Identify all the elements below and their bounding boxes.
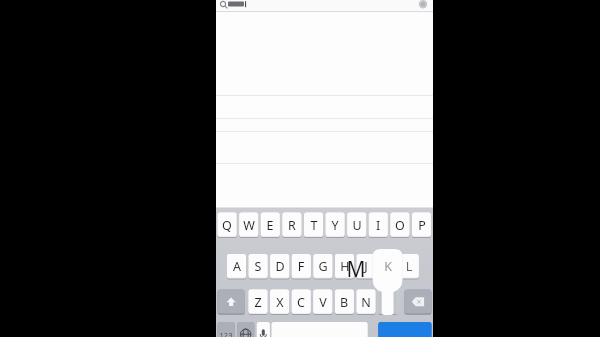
staticText: J bbox=[355, 258, 377, 277]
button[interactable]: S bbox=[249, 254, 268, 279]
staticText: A bbox=[226, 258, 248, 277]
button[interactable]: R bbox=[282, 213, 301, 238]
staticText: U bbox=[346, 217, 368, 236]
button[interactable]: K bbox=[378, 254, 397, 279]
staticText: E bbox=[259, 217, 281, 236]
button[interactable]: Backspace bbox=[404, 290, 431, 315]
button[interactable]: C bbox=[292, 290, 311, 315]
staticText: Y bbox=[324, 217, 346, 236]
staticText: O bbox=[389, 217, 411, 236]
button[interactable]: D bbox=[270, 254, 289, 279]
staticText: P bbox=[411, 217, 433, 236]
button[interactable]: Search field bbox=[216, 0, 433, 11]
button[interactable]: T bbox=[304, 213, 323, 238]
staticText: B bbox=[333, 294, 355, 313]
button[interactable]: W bbox=[239, 213, 258, 238]
button[interactable]: Q bbox=[218, 213, 237, 238]
button[interactable]: O bbox=[390, 213, 409, 238]
button[interactable]: G bbox=[313, 254, 332, 279]
button[interactable]: B bbox=[335, 290, 354, 315]
button[interactable]: J bbox=[357, 254, 376, 279]
button[interactable]: F bbox=[292, 254, 311, 279]
staticText: D bbox=[269, 258, 291, 277]
button[interactable]: X bbox=[270, 290, 289, 315]
staticText: F bbox=[290, 258, 312, 277]
staticText: V bbox=[312, 294, 334, 313]
staticText: S bbox=[247, 258, 269, 277]
button[interactable]: N bbox=[357, 290, 376, 315]
staticText: Q bbox=[216, 217, 238, 236]
staticText: H bbox=[334, 258, 356, 277]
button[interactable]: Change keyboard bbox=[237, 322, 254, 337]
staticText: M bbox=[345, 255, 367, 287]
staticText: Z bbox=[247, 294, 269, 313]
button[interactable]: H bbox=[335, 254, 354, 279]
button[interactable]: Dictate bbox=[257, 322, 270, 337]
staticText: C bbox=[290, 294, 312, 313]
staticText: N bbox=[355, 294, 377, 313]
button[interactable]: Shift bbox=[218, 290, 245, 315]
button[interactable]: E bbox=[261, 213, 280, 238]
button[interactable]: V bbox=[313, 290, 332, 315]
button[interactable]: Z bbox=[249, 290, 268, 315]
button[interactable]: Y bbox=[326, 213, 345, 238]
staticText: T bbox=[303, 217, 325, 236]
staticText: W bbox=[238, 217, 260, 236]
staticText: X bbox=[269, 294, 291, 313]
staticText: L bbox=[398, 258, 420, 277]
button[interactable]: Search bbox=[378, 322, 431, 337]
button[interactable]: A bbox=[227, 254, 246, 279]
staticText: G bbox=[312, 258, 334, 277]
staticText: R bbox=[281, 217, 303, 236]
button[interactable]: L bbox=[400, 254, 419, 279]
button[interactable]: P bbox=[412, 213, 431, 238]
staticText: I bbox=[367, 217, 389, 236]
button[interactable]: I bbox=[369, 213, 388, 238]
staticText: 123 bbox=[215, 330, 237, 337]
staticText: K bbox=[377, 258, 399, 277]
button[interactable]: Numbers bbox=[218, 322, 235, 337]
button[interactable]: U bbox=[347, 213, 366, 238]
